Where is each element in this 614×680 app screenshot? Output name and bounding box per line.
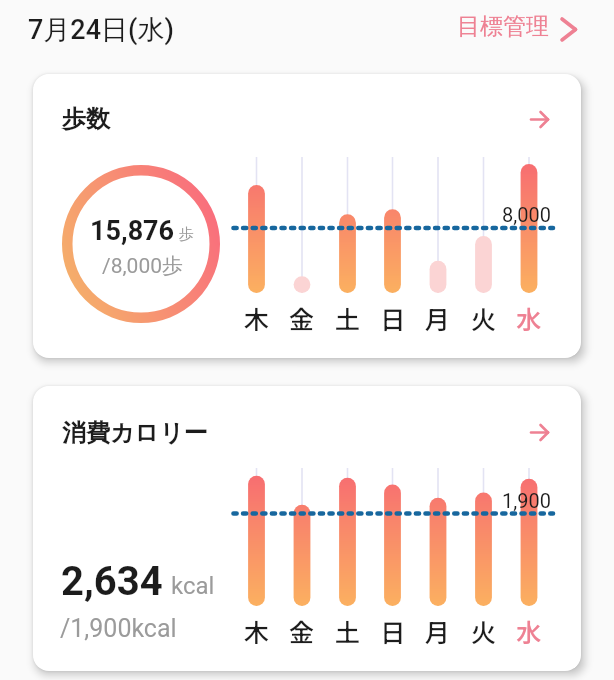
staticText: 日 <box>380 613 406 649</box>
staticText: 月 <box>425 300 451 336</box>
button[interactable]: 消費カロリーの詳細 <box>524 417 554 447</box>
button[interactable]: 歩数の詳細 <box>524 104 554 134</box>
staticText: 7月24日(水) <box>28 13 174 47</box>
staticText: 木 <box>244 300 270 336</box>
button[interactable] <box>33 386 581 671</box>
staticText: 金 <box>289 613 315 649</box>
staticText: 火 <box>471 613 497 649</box>
staticText: 消費カロリー <box>62 418 208 448</box>
staticText: 木 <box>244 613 270 649</box>
staticText: 1,900 <box>502 489 551 512</box>
staticText: 歩数 <box>62 104 110 134</box>
button[interactable]: 目標管理 <box>457 12 578 41</box>
staticText: 目標管理 <box>457 12 549 41</box>
button[interactable]: 7月24日(水) <box>28 13 174 47</box>
staticText: 8,000 <box>502 203 551 226</box>
staticText: 月 <box>425 613 451 649</box>
staticText: 日 <box>380 300 406 336</box>
staticText: 土 <box>335 300 361 336</box>
staticText: 水 <box>516 613 542 649</box>
button[interactable] <box>33 74 581 358</box>
staticText: 土 <box>335 613 361 649</box>
staticText: /8,000歩 <box>102 253 184 279</box>
staticText: 水 <box>516 300 542 336</box>
staticText: kcal <box>171 572 215 600</box>
staticText: /1,900kcal <box>60 614 177 643</box>
staticText: 歩 <box>179 225 194 244</box>
staticText: 火 <box>471 300 497 336</box>
staticText: 2,634 <box>61 558 163 605</box>
staticText: 15,876 <box>90 215 175 247</box>
staticText: 金 <box>289 300 315 336</box>
